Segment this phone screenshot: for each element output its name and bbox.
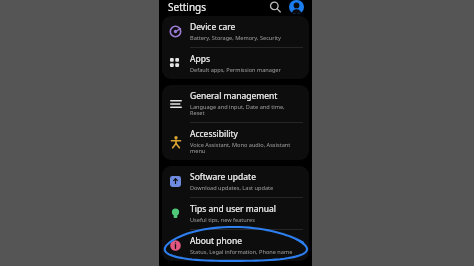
staticText: About phone	[190, 235, 243, 247]
button[interactable]: Accessibility	[162, 123, 309, 160]
staticText: Tips and user manual	[190, 203, 276, 215]
button[interactable]: Apps	[162, 48, 309, 79]
staticText: Apps	[190, 53, 210, 65]
button[interactable]: Tips and user manual	[162, 198, 309, 229]
staticText: Useful tips, new features	[190, 216, 255, 224]
staticText: Language and input, Date and time, Reset	[190, 103, 285, 117]
staticText: Settings	[168, 0, 207, 14]
staticText: Default apps, Permission manager	[190, 66, 281, 74]
button[interactable]: General management	[162, 85, 309, 122]
staticText: Accessibility	[190, 128, 238, 140]
staticText: Status, Legal information, Phone name	[190, 248, 293, 256]
button[interactable]: Device care	[162, 16, 309, 47]
button[interactable]: Account	[289, 0, 304, 14]
button[interactable]: Software update	[162, 166, 309, 197]
staticText: Download updates, Last update	[190, 184, 274, 192]
staticText: Battery, Storage, Memory, Security	[190, 34, 281, 42]
button[interactable]: About phone	[162, 230, 309, 261]
staticText: Device care	[190, 21, 236, 33]
staticText: Software update	[190, 171, 256, 183]
staticText: General management	[190, 90, 278, 102]
button[interactable]: Search	[268, 0, 282, 14]
staticText: Voice Assistant, Mono audio, Assistant m…	[190, 141, 291, 155]
